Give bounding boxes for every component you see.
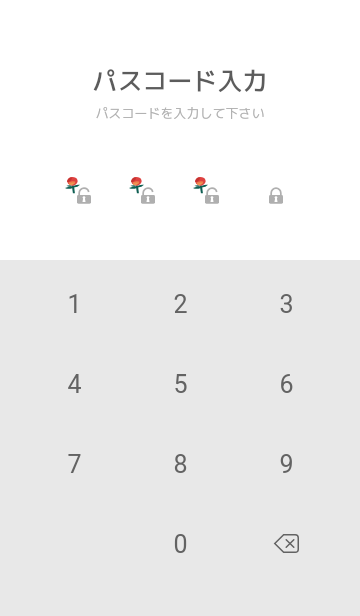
staticText: 8 (173, 450, 188, 479)
staticText: 5 (173, 370, 188, 399)
staticText: 2 (173, 290, 188, 319)
other: Backspace (274, 534, 299, 553)
staticText: 9 (279, 450, 294, 479)
staticText: 4 (67, 370, 82, 399)
button[interactable]: 7 (30, 430, 118, 498)
button[interactable]: 8 (136, 430, 224, 498)
button[interactable]: 6 (242, 350, 330, 418)
staticText: パスコードを入力して下さい (95, 104, 265, 122)
button[interactable]: 9 (242, 430, 330, 498)
button[interactable]: Backspace (242, 510, 330, 578)
staticText: パスコード入力 (92, 63, 268, 98)
button[interactable]: 4 (30, 350, 118, 418)
staticText: 7 (67, 450, 82, 479)
staticText: 0 (173, 530, 188, 559)
button[interactable]: 1 (30, 270, 118, 338)
button[interactable]: 5 (136, 350, 224, 418)
staticText: 3 (279, 290, 294, 319)
staticText: 6 (279, 370, 294, 399)
staticText: 1 (67, 290, 82, 319)
button[interactable]: 0 (136, 510, 224, 578)
button[interactable]: 3 (242, 270, 330, 338)
button[interactable]: 2 (136, 270, 224, 338)
